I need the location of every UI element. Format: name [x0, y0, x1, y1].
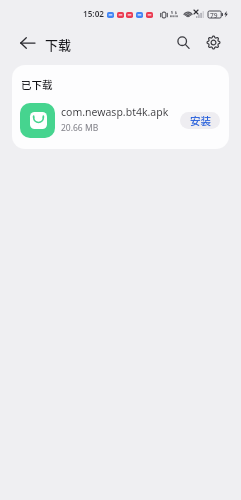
- staticText: 79: [210, 11, 218, 20]
- staticText: 已下载: [21, 77, 53, 92]
- button[interactable]: 安装: [180, 112, 220, 129]
- button[interactable]: Back: [14, 29, 41, 56]
- staticText: 下载: [45, 35, 72, 54]
- button[interactable]: Search: [170, 29, 197, 56]
- staticText: 20.66 MB: [61, 122, 99, 134]
- button[interactable]: Settings: [200, 29, 227, 56]
- button[interactable]: com.newasp.bt4k.apk: [12, 93, 229, 148]
- staticText: 安装: [190, 113, 211, 128]
- staticText: com.newasp.bt4k.apk: [61, 105, 169, 119]
- staticText: 15:02: [83, 8, 104, 19]
